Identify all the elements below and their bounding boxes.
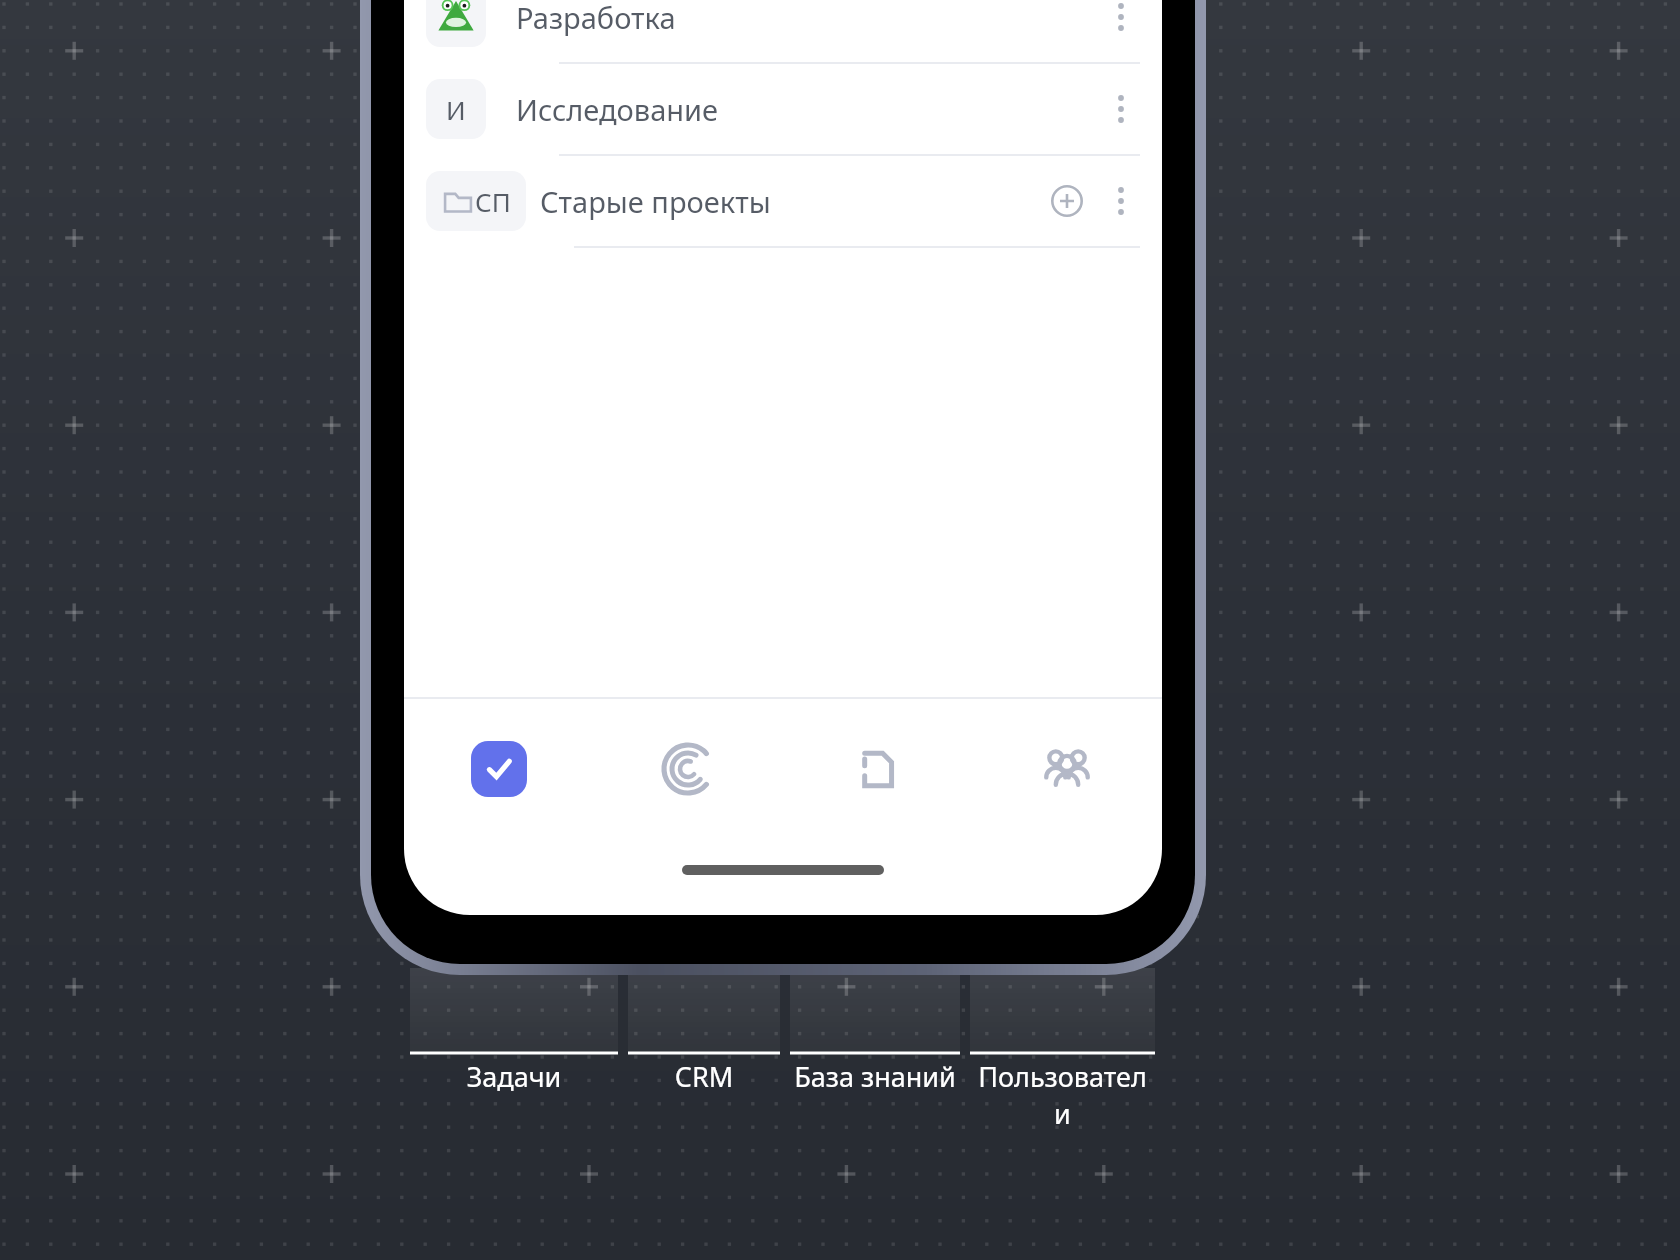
staticText: База знаний xyxy=(790,1058,960,1095)
button[interactable]: И xyxy=(404,64,1162,156)
staticText: CRM xyxy=(628,1058,780,1095)
staticText: Старые проекты xyxy=(540,182,1040,221)
button[interactable]: Разработка xyxy=(404,0,1162,64)
staticText: Разработка xyxy=(516,0,1094,37)
button[interactable]: Пользователи xyxy=(972,699,1162,839)
staticText: СП xyxy=(475,184,511,219)
button[interactable]: СП xyxy=(404,156,1162,248)
staticText: Исследование xyxy=(516,90,1094,129)
button[interactable]: База знаний xyxy=(782,699,972,839)
staticText: Задачи xyxy=(410,1058,618,1095)
button[interactable]: Ещё xyxy=(1094,0,1148,44)
button[interactable]: Ещё xyxy=(1094,82,1148,136)
button[interactable]: Ещё xyxy=(1094,174,1148,228)
button[interactable]: Добавить xyxy=(1040,174,1094,228)
button[interactable]: Задачи xyxy=(404,699,593,839)
button[interactable]: CRM xyxy=(593,699,782,839)
staticText: Пользователи xyxy=(970,1058,1155,1132)
staticText: И xyxy=(446,92,466,127)
